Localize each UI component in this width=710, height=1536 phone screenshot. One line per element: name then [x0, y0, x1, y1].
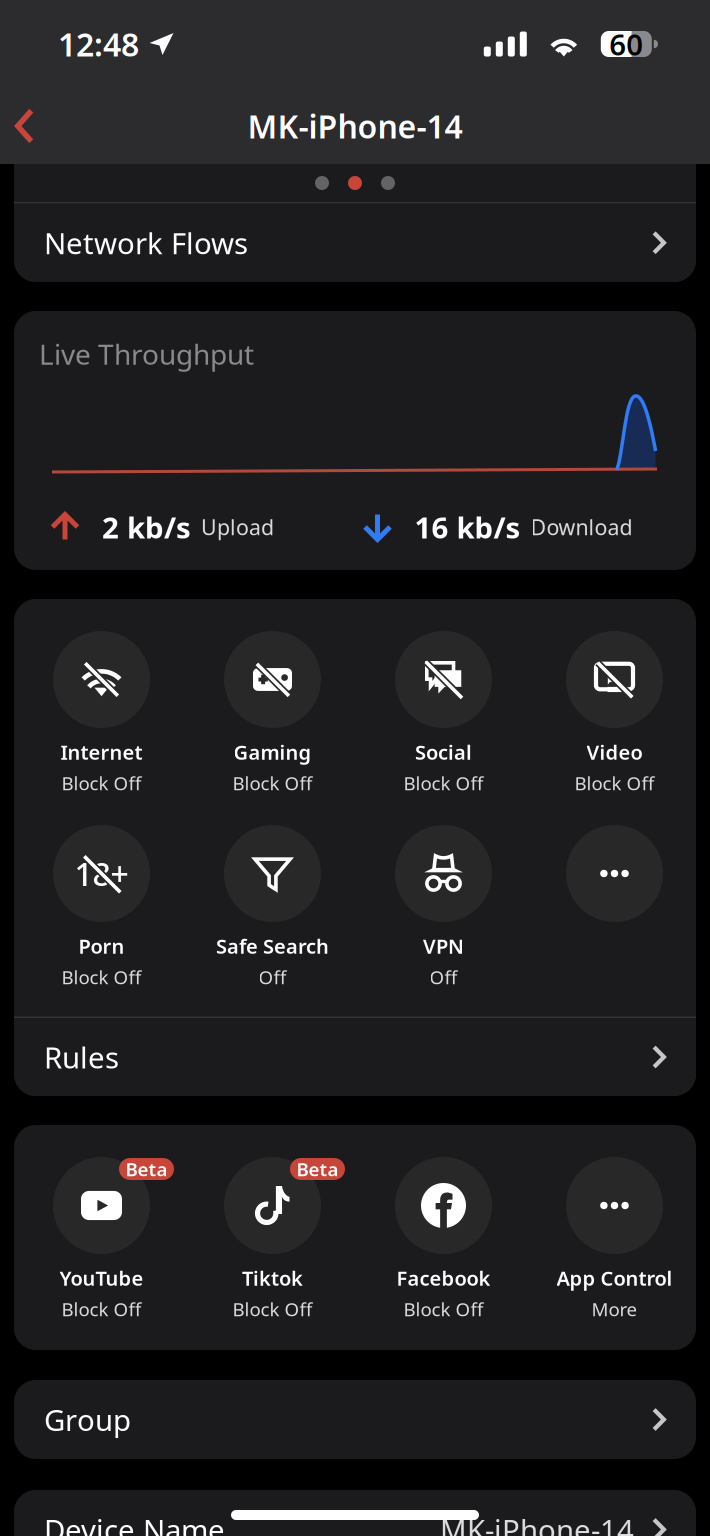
staticText: VPN — [423, 933, 464, 959]
staticText: Tiktok — [242, 1265, 303, 1291]
staticText: 60 — [609, 24, 643, 63]
staticText: App Control — [556, 1265, 672, 1291]
staticText: Off — [258, 965, 286, 989]
staticText: Social — [415, 739, 472, 765]
staticText: Block Off — [232, 1297, 312, 1321]
button[interactable]: Internet — [16, 631, 187, 793]
button[interactable]: Safe Search — [187, 825, 358, 987]
staticText: Block Off — [574, 771, 654, 795]
button[interactable]: Rules — [14, 1018, 696, 1096]
button[interactable]: App Control — [529, 1157, 700, 1319]
button[interactable]: Network Flows — [14, 203, 696, 282]
staticText: Block Off — [61, 1297, 141, 1321]
button[interactable] — [529, 825, 700, 987]
staticText: Beta — [296, 1157, 338, 1181]
button[interactable]: Beta — [16, 1157, 187, 1319]
button[interactable]: Gaming — [187, 631, 358, 793]
button[interactable]: Video — [529, 631, 700, 793]
staticText: 16 kb/s — [414, 507, 520, 546]
button[interactable]: Social — [358, 631, 529, 793]
button[interactable]: Group — [14, 1380, 696, 1459]
staticText: Internet — [60, 739, 142, 765]
staticText: 18+ — [74, 852, 128, 895]
button[interactable]: VPN — [358, 825, 529, 987]
staticText: Upload — [201, 513, 274, 541]
staticText: MK-iPhone-14 — [440, 1510, 634, 1536]
staticText: Porn — [78, 933, 124, 959]
staticText: Block Off — [403, 771, 483, 795]
staticText: 2 kb/s — [102, 507, 191, 546]
staticText: Gaming — [233, 739, 311, 765]
staticText: Group — [44, 1400, 131, 1439]
staticText: Block Off — [232, 771, 312, 795]
staticText: More — [591, 1297, 637, 1321]
button[interactable]: Device Name — [14, 1490, 696, 1536]
button[interactable]: Facebook — [358, 1157, 529, 1319]
staticText: Live Throughput — [39, 335, 254, 373]
button[interactable]: Beta — [187, 1157, 358, 1319]
staticText: Download — [530, 513, 632, 541]
staticText: Block Off — [61, 771, 141, 795]
staticText: Device Name — [44, 1510, 225, 1536]
staticText: Safe Search — [216, 933, 329, 959]
staticText: Beta — [125, 1157, 167, 1181]
staticText: Video — [586, 739, 642, 765]
staticText: MK-iPhone-14 — [247, 105, 462, 147]
button[interactable]: 18+ — [16, 825, 187, 987]
staticText: YouTube — [59, 1265, 143, 1291]
button[interactable]: Back — [0, 88, 58, 164]
staticText: Rules — [44, 1037, 119, 1076]
staticText: Network Flows — [44, 223, 248, 262]
staticText: Off — [429, 965, 457, 989]
staticText: Facebook — [396, 1265, 490, 1291]
staticText: Block Off — [61, 965, 141, 989]
staticText: Block Off — [403, 1297, 483, 1321]
staticText: 12:48 — [58, 23, 139, 65]
